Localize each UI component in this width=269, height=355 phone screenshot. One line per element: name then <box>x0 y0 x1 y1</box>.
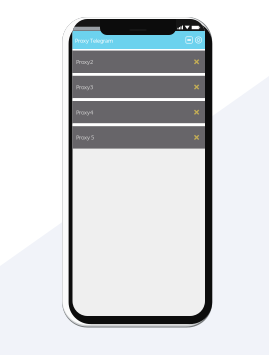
button[interactable]: Settings <box>194 37 203 43</box>
button[interactable]: Proxy3 <box>72 76 205 98</box>
button[interactable]: Proxy2 <box>72 51 205 73</box>
staticText: Proxy3 <box>76 83 93 91</box>
staticText: Proxy Telegram <box>75 37 113 44</box>
button[interactable]: Proxy4 <box>72 101 205 123</box>
button[interactable]: Delete Proxy3 <box>192 82 201 92</box>
button[interactable]: Delete Proxy 5 <box>192 133 201 142</box>
staticText: Proxy4 <box>76 108 93 116</box>
button[interactable]: Delete Proxy2 <box>192 57 201 66</box>
button[interactable]: Add proxy <box>184 37 194 43</box>
button[interactable]: Delete Proxy4 <box>192 108 201 117</box>
staticText: Proxy2 <box>76 58 93 66</box>
button[interactable]: Proxy 5 <box>72 126 205 149</box>
staticText: Proxy 5 <box>76 133 94 141</box>
